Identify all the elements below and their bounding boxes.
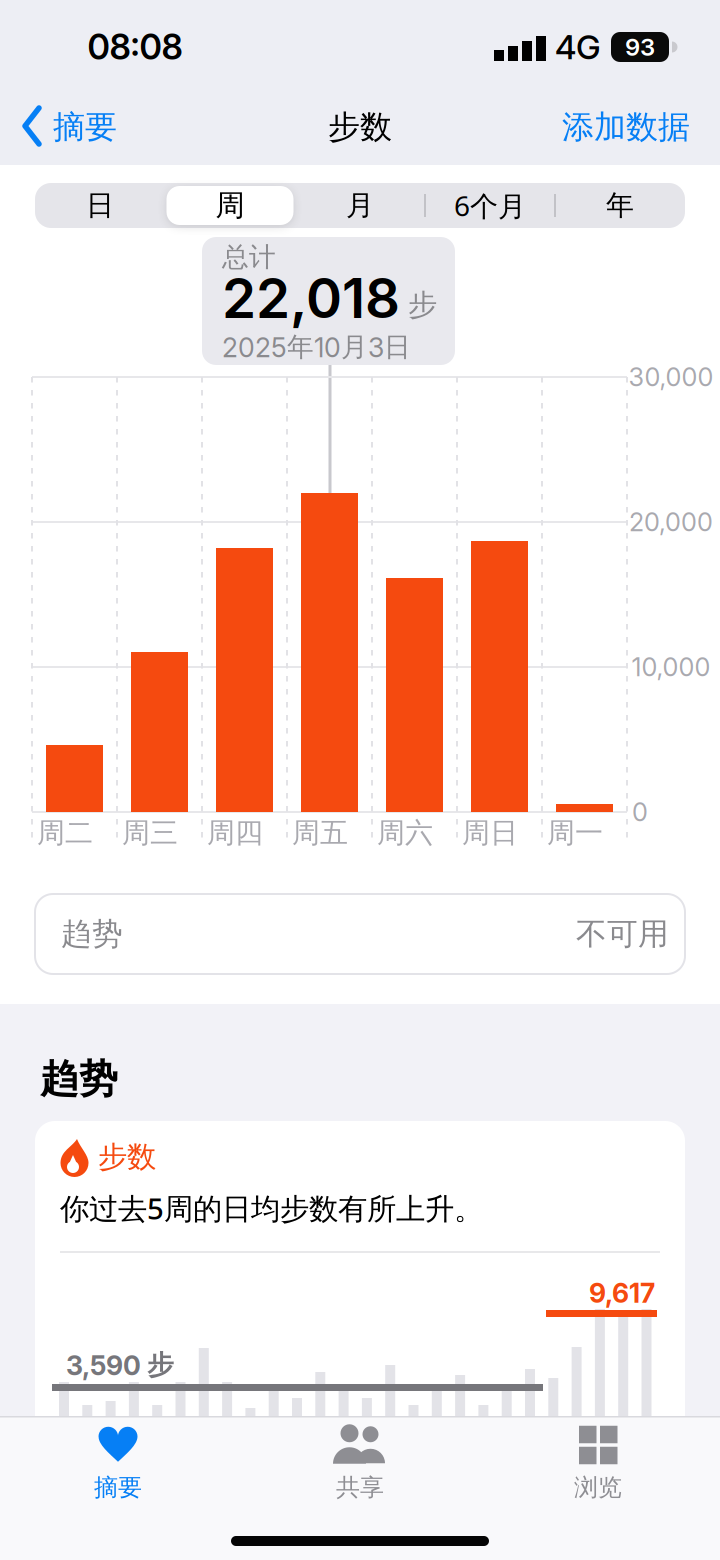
button[interactable]: 摘要 [23, 107, 117, 147]
button[interactable]: 趋势 [35, 894, 685, 974]
staticText: 2025年10月3日 [222, 330, 411, 364]
staticText: 0 [632, 797, 648, 827]
staticText: 周五 [292, 816, 348, 850]
staticText: 22,018 [222, 265, 400, 331]
staticText: 共享 [336, 1473, 384, 1502]
staticText: 总计 [222, 241, 276, 273]
staticText: 你过去5周的日均步数有所上升。 [60, 1188, 483, 1227]
staticText: 摘要 [94, 1473, 142, 1502]
staticText: 6个月 [454, 187, 526, 224]
staticText: 步数 [328, 107, 392, 147]
button[interactable]: 日 [37, 185, 163, 225]
staticText: 周四 [207, 816, 263, 850]
staticText: 日 [86, 188, 114, 223]
staticText: 浏览 [574, 1473, 622, 1502]
button[interactable]: 月 [297, 185, 423, 225]
button[interactable]: 年 [557, 185, 683, 225]
staticText: 年 [606, 188, 634, 223]
button[interactable]: 共享 [280, 1409, 440, 1519]
button[interactable]: 浏览 [518, 1409, 678, 1519]
button[interactable]: 周 [169, 186, 291, 225]
staticText: 08:08 [87, 26, 182, 68]
staticText: 摘要 [53, 107, 117, 147]
staticText: 4G [555, 27, 601, 67]
button[interactable]: 6个月 [427, 185, 553, 225]
staticText: 93 [625, 32, 655, 61]
staticText: 周二 [37, 816, 93, 850]
button[interactable]: 摘要 [38, 1409, 198, 1519]
staticText: 10,000 [631, 652, 710, 682]
staticText: 步 [408, 287, 437, 323]
staticText: 9,617 [589, 1277, 655, 1309]
staticText: 周六 [377, 816, 433, 850]
staticText: 周一 [547, 816, 603, 850]
staticText: 趋势 [61, 915, 123, 953]
staticText: 步数 [98, 1139, 156, 1175]
staticText: 不可用 [576, 915, 669, 953]
staticText: 3,590 步 [66, 1348, 174, 1382]
staticText: 月 [346, 188, 374, 223]
staticText: 20,000 [629, 507, 713, 537]
staticText: 添加数据 [562, 107, 690, 147]
button[interactable]: 添加数据 [562, 107, 690, 147]
staticText: 周日 [462, 816, 518, 850]
staticText: 周 [215, 187, 244, 223]
staticText: 趋势 [40, 1055, 118, 1103]
staticText: 周三 [122, 816, 178, 850]
staticText: 30,000 [628, 362, 713, 392]
